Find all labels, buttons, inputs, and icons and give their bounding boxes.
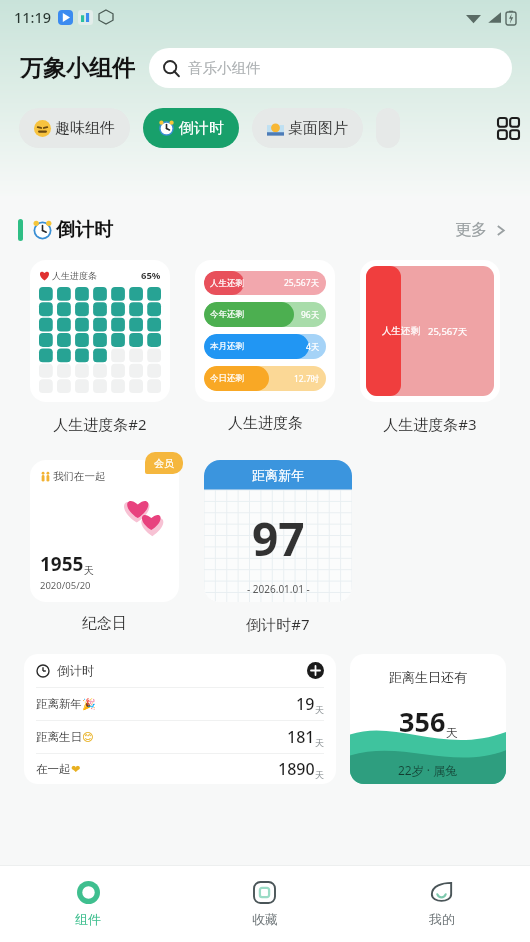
staticText: 天	[84, 564, 94, 577]
staticText: 2020/05/20	[40, 579, 91, 592]
button[interactable]: 在一起	[36, 754, 324, 784]
staticText: 更多	[455, 220, 487, 240]
staticText: 人生还剩	[210, 278, 244, 289]
staticText: 人生进度条	[52, 270, 97, 281]
button[interactable]: 人生还剩	[360, 260, 500, 434]
staticText: 11:19	[14, 7, 52, 27]
staticText: 天	[315, 769, 324, 780]
staticText: 22岁 · 属兔	[398, 762, 458, 778]
staticText: 纪念日	[82, 614, 127, 633]
staticText: 今年还剩	[210, 309, 244, 320]
button[interactable]: 我们在一起	[30, 460, 179, 633]
staticText: 1955	[40, 551, 84, 577]
staticText: 人生还剩	[382, 325, 420, 337]
staticText: 181	[287, 726, 315, 748]
button[interactable]: 更多	[451, 216, 512, 244]
staticText: 356	[399, 703, 446, 740]
button[interactable]: 我的	[353, 866, 530, 942]
staticText: 天	[315, 704, 324, 715]
staticText: 25,567天	[428, 325, 468, 338]
staticText: 人生进度条#3	[383, 414, 477, 434]
button[interactable]: 收藏	[176, 866, 353, 942]
staticText: 倒计时	[179, 119, 224, 138]
staticText: 距离生日	[36, 730, 82, 744]
staticText: 12.7时	[294, 373, 320, 385]
staticText: 倒计时#7	[246, 614, 310, 634]
staticText: 🎉	[82, 698, 96, 711]
staticText: 97	[252, 507, 305, 570]
staticText: 距离生日还有	[389, 669, 467, 685]
button[interactable]: 人生进度条	[30, 260, 170, 434]
staticText: 我的	[429, 911, 455, 927]
staticText: 距离新年	[252, 467, 304, 483]
staticText: 人生进度条#2	[53, 414, 147, 434]
button[interactable]: All categories	[486, 106, 530, 150]
button[interactable]: 倒计时	[143, 108, 239, 148]
button[interactable]: 人生还剩	[195, 260, 335, 433]
staticText: 96天	[301, 309, 320, 321]
staticText: 19	[296, 693, 315, 715]
button[interactable]: 音乐小组件	[149, 48, 512, 88]
staticText: 1890	[278, 758, 315, 780]
button[interactable]: 桌面图片	[252, 108, 363, 148]
staticText: 我们在一起	[53, 470, 106, 483]
staticText: 65%	[141, 269, 161, 282]
staticText: 本月还剩	[210, 341, 244, 352]
staticText: 万象小组件	[20, 54, 135, 83]
button[interactable]: 组件	[0, 866, 176, 942]
staticText: 😊	[82, 731, 94, 744]
staticText: 组件	[75, 911, 101, 927]
staticText: 桌面图片	[288, 119, 348, 138]
staticText: 趣味组件	[55, 119, 115, 138]
staticText: 距离新年	[36, 697, 82, 711]
staticText: 倒计时	[56, 218, 113, 242]
staticText: 倒计时	[57, 663, 95, 679]
staticText: 在一起	[36, 762, 71, 776]
staticText: 音乐小组件	[188, 59, 261, 77]
button[interactable]: 距离新年	[36, 688, 324, 720]
staticText: 会员	[154, 457, 174, 470]
staticText: 人生进度条	[228, 414, 303, 433]
staticText: 天	[315, 737, 324, 748]
staticText: 4天	[306, 341, 320, 353]
button[interactable]: 趣味组件	[19, 108, 130, 148]
button[interactable]: 距离新年	[204, 460, 352, 634]
staticText: 今日还剩	[210, 373, 244, 384]
button[interactable]: 距离生日	[36, 721, 324, 753]
button[interactable]: Add countdown	[307, 662, 324, 679]
staticText: 收藏	[252, 911, 278, 927]
staticText: ❤	[71, 763, 81, 776]
staticText: - 2026.01.01 -	[247, 582, 310, 596]
staticText: 天	[446, 725, 458, 740]
staticText: 25,567天	[284, 277, 320, 289]
